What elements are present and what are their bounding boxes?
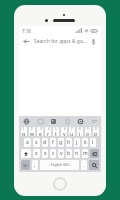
staticText: 2	[31, 127, 33, 131]
button[interactable]: 1	[21, 127, 27, 136]
button[interactable]: k	[82, 138, 88, 147]
staticText: 7:18	[22, 28, 31, 34]
other: Search	[89, 160, 99, 170]
staticText: q	[22, 131, 26, 136]
button[interactable]: c	[50, 149, 56, 158]
other: Backspace	[90, 149, 99, 158]
button[interactable]: Search	[89, 160, 99, 170]
button[interactable]: n	[74, 149, 80, 158]
staticText: f	[52, 139, 54, 146]
button[interactable]: 7	[69, 127, 75, 136]
staticText: s	[35, 139, 38, 146]
button[interactable]: 2	[29, 127, 35, 136]
staticText: p	[94, 131, 98, 136]
button[interactable]: Settings	[76, 117, 84, 125]
button[interactable]: Backspace	[90, 149, 99, 158]
button[interactable]: z	[33, 149, 40, 158]
staticText: 9	[87, 127, 89, 131]
button[interactable]: Emoji	[22, 117, 30, 125]
staticText: y	[63, 131, 66, 136]
button[interactable]: 9	[85, 127, 91, 136]
button[interactable]: .	[81, 160, 87, 170]
button[interactable]: f	[50, 138, 56, 147]
button[interactable]: v	[58, 149, 64, 158]
button[interactable]: s	[33, 138, 40, 147]
staticText: ‹	[49, 163, 51, 167]
staticText: 8	[79, 127, 81, 131]
button[interactable]: 5	[53, 127, 59, 136]
button[interactable]: 6	[61, 127, 67, 136]
staticText: v	[60, 150, 63, 157]
staticText: ,	[34, 162, 36, 169]
staticText: b	[67, 150, 71, 157]
button[interactable]: Home	[53, 177, 67, 191]
button[interactable]: 3	[37, 127, 43, 136]
staticText: 3	[40, 127, 42, 131]
staticText: 7	[71, 127, 73, 131]
staticText: 0	[95, 127, 97, 131]
button[interactable]: j	[74, 138, 80, 147]
staticText: m	[83, 150, 88, 157]
button[interactable]: Sticker	[49, 117, 57, 125]
button[interactable]: 8	[77, 127, 83, 136]
staticText: d	[43, 139, 47, 146]
staticText: x	[44, 150, 47, 157]
staticText: ›	[69, 163, 71, 167]
button[interactable]: Search for apps & ga...	[34, 38, 87, 45]
staticText: j	[76, 139, 78, 146]
staticText: o	[86, 131, 90, 136]
staticText: h	[67, 139, 71, 146]
button[interactable]: Back	[22, 37, 31, 46]
staticText: .	[83, 162, 85, 169]
staticText: English (US)	[51, 163, 69, 167]
button[interactable]: a	[24, 138, 31, 147]
button[interactable]: l	[90, 138, 96, 147]
staticText: z	[35, 150, 38, 157]
staticText: w	[30, 131, 34, 136]
button[interactable]: !#1	[21, 160, 30, 170]
button[interactable]: x	[42, 149, 48, 158]
button[interactable]: ‹	[40, 160, 79, 170]
button[interactable]: b	[66, 149, 72, 158]
staticText: 4	[48, 127, 50, 131]
button[interactable]: d	[42, 138, 48, 147]
staticText: e	[39, 131, 42, 136]
staticText: k	[84, 139, 87, 146]
button[interactable]: h	[66, 138, 72, 147]
button[interactable]: g	[58, 138, 64, 147]
staticText: a	[26, 139, 29, 146]
button[interactable]: 4	[45, 127, 51, 136]
button[interactable]: Shift	[21, 149, 31, 158]
staticText: Search for apps & ga...	[34, 38, 87, 45]
button[interactable]: 0	[93, 127, 99, 136]
other: Shift	[21, 149, 31, 158]
staticText: i	[79, 131, 81, 136]
staticText: !#1	[23, 163, 29, 168]
staticText: n	[75, 150, 79, 157]
staticText: c	[52, 150, 55, 157]
button[interactable]: ,	[32, 160, 38, 170]
staticText: t	[55, 131, 57, 136]
staticText: 6	[64, 127, 66, 131]
staticText: l	[92, 139, 94, 146]
button[interactable]: GIF	[36, 117, 44, 125]
staticText: 5	[55, 127, 57, 131]
button[interactable]: m	[82, 149, 88, 158]
button[interactable]: Voice search	[89, 37, 98, 46]
button[interactable]: Clipboard	[63, 117, 71, 125]
staticText: u	[70, 131, 74, 136]
staticText: g	[59, 139, 63, 146]
staticText: r	[47, 131, 50, 136]
staticText: 1	[23, 127, 25, 131]
button[interactable]: More	[90, 117, 98, 125]
